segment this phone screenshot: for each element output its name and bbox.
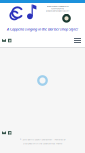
- staticText: A CHAPTER OF THE: [51, 7, 64, 10]
- button[interactable]: Email us: [2, 38, 6, 42]
- staticText: BARRIE COUNTY CHORDSMEN: [46, 5, 68, 7]
- staticText: © 2018 Barrie County Chordsmen - Powered…: [19, 138, 65, 141]
- button[interactable]: Facebook: [8, 131, 12, 135]
- staticText: A Cappella singing in the Barbershop Sty…: [7, 26, 78, 32]
- staticText: Designed with the CyberChimps Theme: [23, 142, 62, 145]
- button[interactable]: Menu: [72, 36, 83, 45]
- button[interactable]: Facebook: [8, 38, 12, 42]
- staticText: BARBERSHOP HARMONY SOCIETY: [45, 10, 69, 12]
- button[interactable]: Email us: [2, 131, 6, 135]
